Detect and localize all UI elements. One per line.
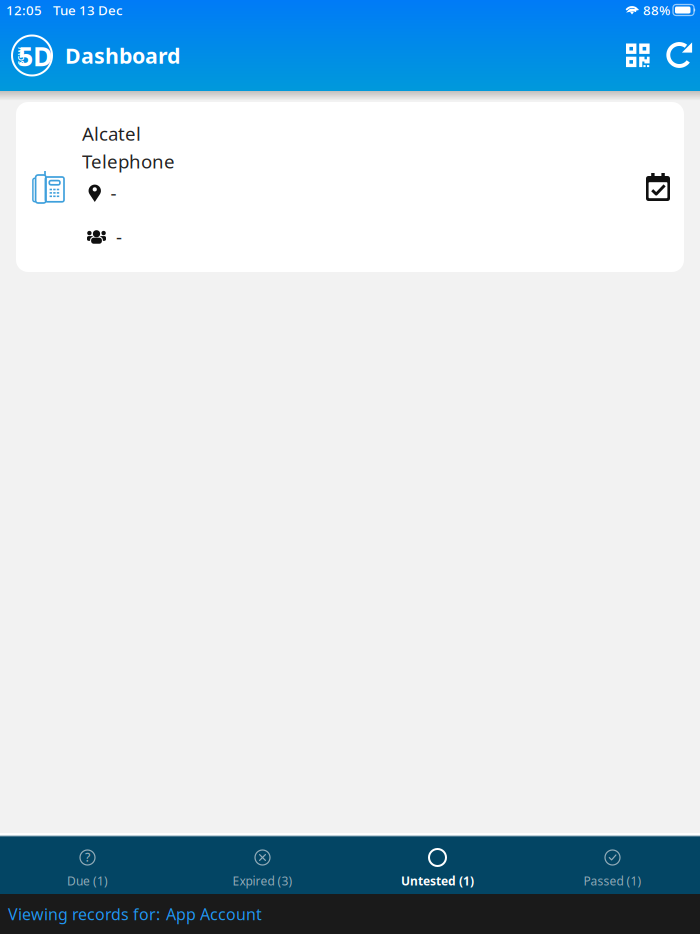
staticText: Alcatel <box>82 121 141 146</box>
button[interactable]: Alcatel <box>16 102 684 272</box>
staticText: - <box>110 181 116 205</box>
staticText: 12:05 <box>6 1 42 19</box>
button[interactable]: Expired (3) <box>175 834 350 894</box>
staticText: 88% <box>643 1 670 19</box>
staticText: Passed (1) <box>583 873 641 889</box>
staticText: - <box>116 224 122 249</box>
staticText: Untested (1) <box>401 873 474 889</box>
staticText: Telephone <box>82 149 175 174</box>
button[interactable]: Refresh <box>658 32 699 78</box>
staticText: SGW <box>12 51 30 61</box>
staticText: ? <box>85 849 90 865</box>
button[interactable]: Scan QR code <box>618 32 658 78</box>
staticText: App Account <box>166 903 262 925</box>
staticText: Due (1) <box>67 873 108 889</box>
staticText: Dashboard <box>65 41 180 70</box>
button[interactable]: Untested (1) <box>350 834 525 894</box>
button[interactable]: ? <box>0 834 175 894</box>
staticText: 5D <box>18 38 53 74</box>
staticText: Tue 13 Dec <box>53 1 123 19</box>
staticText: Viewing records for: <box>8 903 160 925</box>
staticText: Expired (3) <box>232 873 292 889</box>
button[interactable]: Passed (1) <box>525 834 700 894</box>
